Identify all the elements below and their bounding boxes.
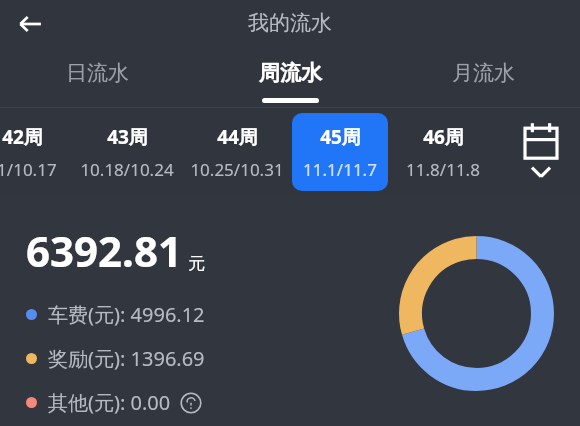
- button[interactable]: 46周: [391, 113, 495, 191]
- staticText: 6392.81: [26, 222, 182, 279]
- button[interactable]: 45周: [292, 113, 388, 191]
- staticText: 11/10.17: [0, 158, 57, 181]
- button[interactable]: 43周: [75, 113, 179, 191]
- staticText: 43周: [107, 124, 148, 150]
- staticText: 46周: [423, 124, 464, 150]
- button[interactable]: 日流水: [0, 48, 194, 108]
- staticText: 我的流水: [248, 10, 332, 36]
- staticText: 日流水: [66, 60, 129, 86]
- staticText: 奖励(元): 1396.69: [48, 345, 205, 372]
- button[interactable]: 42周: [0, 113, 58, 191]
- staticText: 周流水: [259, 60, 322, 86]
- staticText: 11.1/11.7: [303, 158, 377, 181]
- button[interactable]: Help: [180, 392, 202, 414]
- button[interactable]: 周流水: [194, 48, 387, 108]
- button[interactable]: 月流水: [387, 48, 580, 108]
- staticText: 45周: [320, 124, 361, 150]
- staticText: 44周: [217, 124, 258, 150]
- staticText: 月流水: [452, 60, 515, 86]
- button[interactable]: Back: [8, 2, 52, 46]
- button[interactable]: 44周: [185, 113, 289, 191]
- staticText: 42周: [2, 124, 43, 150]
- staticText: 其他(元): 0.00: [48, 389, 171, 416]
- staticText: 11.8/11.8: [406, 158, 480, 181]
- staticText: 10.18/10.24: [80, 158, 174, 181]
- staticText: 车费(元): 4996.12: [48, 301, 205, 328]
- staticText: 元: [188, 253, 205, 274]
- staticText: 10.25/10.31: [190, 158, 284, 181]
- button[interactable]: Select date: [514, 117, 568, 187]
